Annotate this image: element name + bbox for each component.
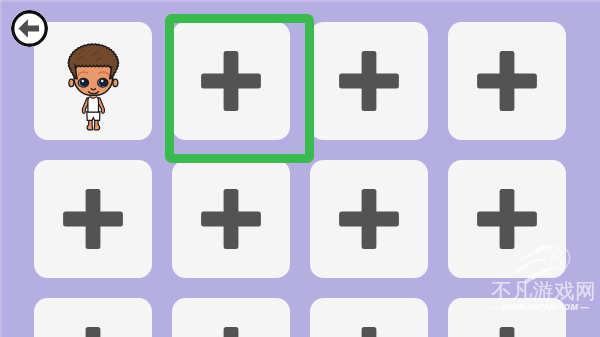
button[interactable]: Add character — [34, 160, 152, 278]
button[interactable]: Add character — [172, 298, 290, 337]
button[interactable]: Character slot 1, filled — [34, 22, 152, 140]
staticText: — WWW.BUFAN.COM — — [490, 300, 590, 312]
button[interactable]: Add character — [310, 22, 428, 140]
button[interactable]: Add character — [448, 22, 566, 140]
button[interactable]: Add character — [172, 22, 290, 140]
staticText: 不凡游戏网 — [491, 278, 596, 304]
button[interactable]: Add character — [310, 298, 428, 337]
button[interactable]: Add character — [172, 160, 290, 278]
button[interactable]: Back — [11, 10, 48, 47]
button[interactable]: Add character — [34, 298, 152, 337]
button[interactable]: Add character — [448, 298, 566, 337]
button[interactable]: Add character — [310, 160, 428, 278]
button[interactable]: Add character — [448, 160, 566, 278]
